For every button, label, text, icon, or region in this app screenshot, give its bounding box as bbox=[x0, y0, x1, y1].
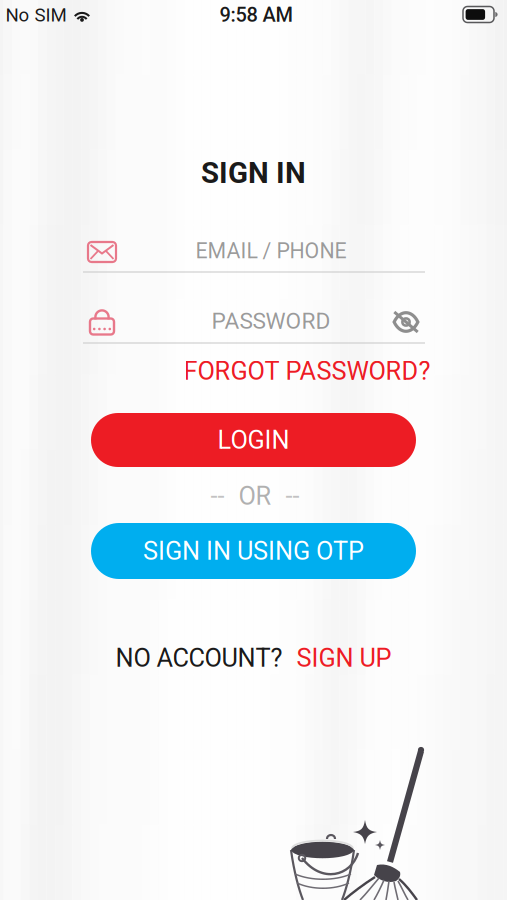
button[interactable]: LOGIN bbox=[91, 413, 416, 467]
staticText: PASSWORD bbox=[211, 308, 330, 334]
button[interactable]: SIGN UP bbox=[296, 643, 391, 673]
staticText: SIGN UP bbox=[296, 643, 391, 673]
staticText: No SIM bbox=[5, 4, 66, 26]
button[interactable]: SIGN IN USING OTP bbox=[91, 523, 416, 579]
staticText: NO ACCOUNT? bbox=[115, 643, 282, 673]
staticText: LOGIN bbox=[217, 425, 289, 455]
staticText: FORGOT PASSWORD? bbox=[183, 356, 430, 386]
staticText: SIGN IN USING OTP bbox=[143, 536, 364, 566]
staticText: SIGN IN bbox=[201, 156, 306, 190]
staticText: -- bbox=[210, 481, 224, 511]
staticText: EMAIL / PHONE bbox=[195, 238, 346, 263]
staticText: OR bbox=[238, 481, 271, 511]
staticText: 9:58 AM bbox=[219, 3, 292, 27]
button[interactable]: FORGOT PASSWORD? bbox=[183, 356, 430, 386]
staticText: -- bbox=[285, 481, 299, 511]
